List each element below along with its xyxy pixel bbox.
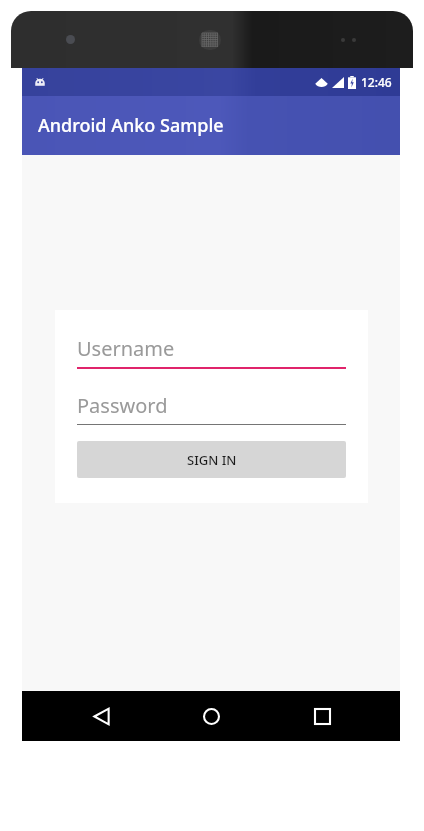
button[interactable]: Password: [77, 392, 346, 425]
staticText: Android Anko Sample: [38, 113, 224, 138]
button[interactable]: Username: [77, 335, 346, 369]
staticText: 12:46: [361, 74, 392, 90]
button[interactable]: Home: [179, 691, 243, 741]
staticText: Username: [77, 335, 175, 362]
staticText: SIGN IN: [187, 451, 237, 469]
button[interactable]: SIGN IN: [77, 441, 346, 478]
button[interactable]: Back: [69, 691, 133, 741]
button[interactable]: Recent apps: [290, 691, 354, 741]
staticText: Password: [77, 392, 168, 419]
